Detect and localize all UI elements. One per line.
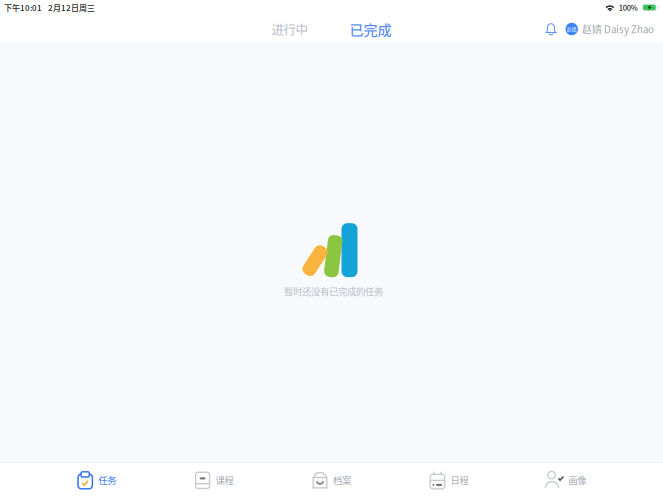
staticText: 日程 (450, 473, 468, 487)
staticText: 进行中 (271, 20, 307, 38)
button[interactable]: 档案 (273, 463, 390, 497)
staticText: 下午10:01 2月12日周三 (4, 2, 95, 13)
button[interactable]: 任务 (38, 463, 155, 497)
button[interactable]: 画像 (508, 463, 625, 497)
staticText: 赵婧 (567, 25, 577, 32)
button[interactable]: 进行中 (260, 15, 318, 43)
staticText: 已完成 (349, 19, 391, 39)
staticText: 画像 (568, 473, 586, 487)
staticText: 课程 (216, 473, 234, 487)
staticText: 暂时还没有已完成的任务 (284, 284, 383, 298)
button[interactable]: 已完成 (338, 14, 402, 44)
staticText: 任务 (98, 473, 116, 487)
staticText: 100% (619, 2, 638, 13)
button[interactable]: 日程 (390, 463, 508, 497)
staticText: 赵婧 Daisy Zhao (582, 22, 654, 36)
button[interactable]: 赵婧 (565, 19, 654, 39)
staticText: 档案 (333, 473, 351, 487)
button[interactable]: 课程 (155, 463, 273, 497)
button[interactable]: Notifications (542, 20, 559, 37)
